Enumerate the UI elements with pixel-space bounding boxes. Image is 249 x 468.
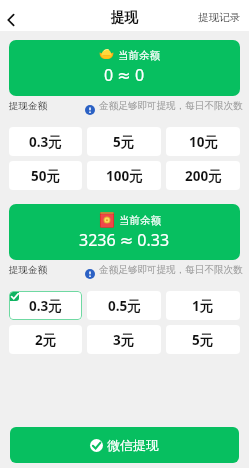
staticText: 10元	[189, 133, 218, 151]
staticText: 3236 ≈ 0.33	[79, 229, 170, 251]
button[interactable]: Back	[0, 9, 22, 31]
button[interactable]: 提现记录	[190, 6, 249, 29]
staticText: 50元	[31, 167, 60, 185]
button[interactable]: 10元	[166, 127, 240, 156]
button[interactable]: 100元	[87, 161, 161, 190]
button[interactable]: 0.5元	[87, 291, 161, 320]
staticText: 提现金额	[9, 264, 47, 276]
button[interactable]: 50元	[9, 161, 82, 190]
button[interactable]: 2元	[9, 325, 82, 354]
button[interactable]: 1元	[166, 291, 240, 320]
staticText: 200元	[185, 167, 222, 185]
staticText: 提现	[111, 9, 138, 26]
staticText: 1元	[192, 297, 214, 315]
staticText: 0.3元	[29, 297, 62, 315]
staticText: 5元	[113, 133, 135, 151]
staticText: 微信提现	[107, 437, 159, 453]
button[interactable]: 5元	[87, 127, 161, 156]
staticText: 当前余额	[118, 49, 160, 62]
staticText: 2元	[35, 331, 57, 349]
staticText: 提现金额	[9, 100, 47, 112]
button[interactable]: 5元	[166, 325, 240, 354]
button[interactable]: 200元	[166, 161, 240, 190]
staticText: 0.5元	[108, 297, 141, 315]
button[interactable]: 微信提现	[10, 427, 239, 463]
staticText: 提现记录	[198, 11, 240, 24]
staticText: 金额足够即可提现，每日不限次数	[99, 264, 243, 276]
staticText: 当前余额	[119, 214, 161, 227]
staticText: 0.3元	[29, 133, 62, 151]
staticText: 5元	[192, 331, 214, 349]
button[interactable]: 3元	[87, 325, 161, 354]
staticText: 100元	[106, 167, 143, 185]
button[interactable]: 0.3元	[9, 291, 82, 320]
button[interactable]: 0.3元	[9, 127, 82, 156]
staticText: 0 ≈ 0	[104, 64, 145, 86]
staticText: 金额足够即可提现，每日不限次数	[99, 100, 243, 112]
staticText: 3元	[113, 331, 135, 349]
